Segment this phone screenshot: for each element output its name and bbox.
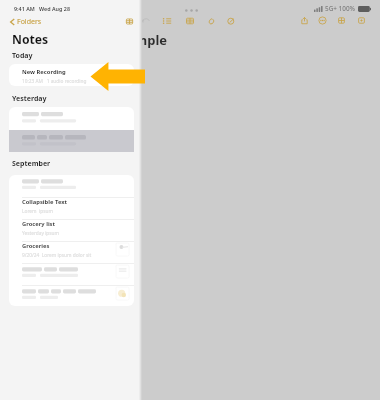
button[interactable]: Grocery list: [9, 219, 134, 241]
button[interactable]: More: [318, 16, 327, 25]
button[interactable]: Markup: [226, 16, 236, 26]
staticText: Grocery list: [22, 220, 56, 228]
button[interactable]: [9, 263, 134, 285]
button[interactable]: Gallery view: [125, 17, 134, 26]
button[interactable]: Compose: [337, 16, 346, 25]
staticText: New Recording: [22, 68, 66, 76]
staticText: Example: [112, 31, 168, 49]
staticText: 9/20/24 Lorem ipsum dolor sit: [22, 252, 92, 259]
button[interactable]: Folders: [10, 17, 42, 27]
button[interactable]: Collapsible Text: [9, 197, 134, 219]
button[interactable]: New Recording: [9, 67, 134, 86]
button[interactable]: [9, 130, 134, 152]
button[interactable]: Attachment: [206, 16, 216, 26]
staticText: Groceries: [22, 242, 50, 250]
staticText: 5G+ 100%: [325, 4, 356, 13]
button[interactable]: Share: [300, 16, 309, 25]
staticText: Notes: [12, 31, 49, 48]
button[interactable]: Undo: [141, 16, 151, 26]
staticText: Wed Aug 28: [39, 5, 70, 12]
button[interactable]: [9, 130, 134, 152]
staticText: Yesterday ipsum: [22, 230, 60, 237]
staticText: 9:41 AM: [14, 5, 35, 12]
staticText: 10:23 AM 1 audio recording: [22, 78, 87, 85]
button[interactable]: [9, 285, 134, 306]
button[interactable]: New Note: [357, 16, 366, 25]
staticText: Lorem ipsum: [22, 208, 53, 215]
staticText: September: [12, 159, 51, 169]
button[interactable]: [9, 175, 134, 197]
staticText: Collapsible Text: [22, 198, 68, 206]
button[interactable]: [9, 107, 134, 130]
button[interactable]: Checklist: [162, 16, 172, 26]
staticText: Today: [12, 51, 33, 61]
button[interactable]: Groceries: [9, 241, 134, 263]
staticText: Yesterday: [12, 94, 47, 104]
button[interactable]: Table: [185, 16, 195, 26]
staticText: Folders: [17, 17, 42, 27]
